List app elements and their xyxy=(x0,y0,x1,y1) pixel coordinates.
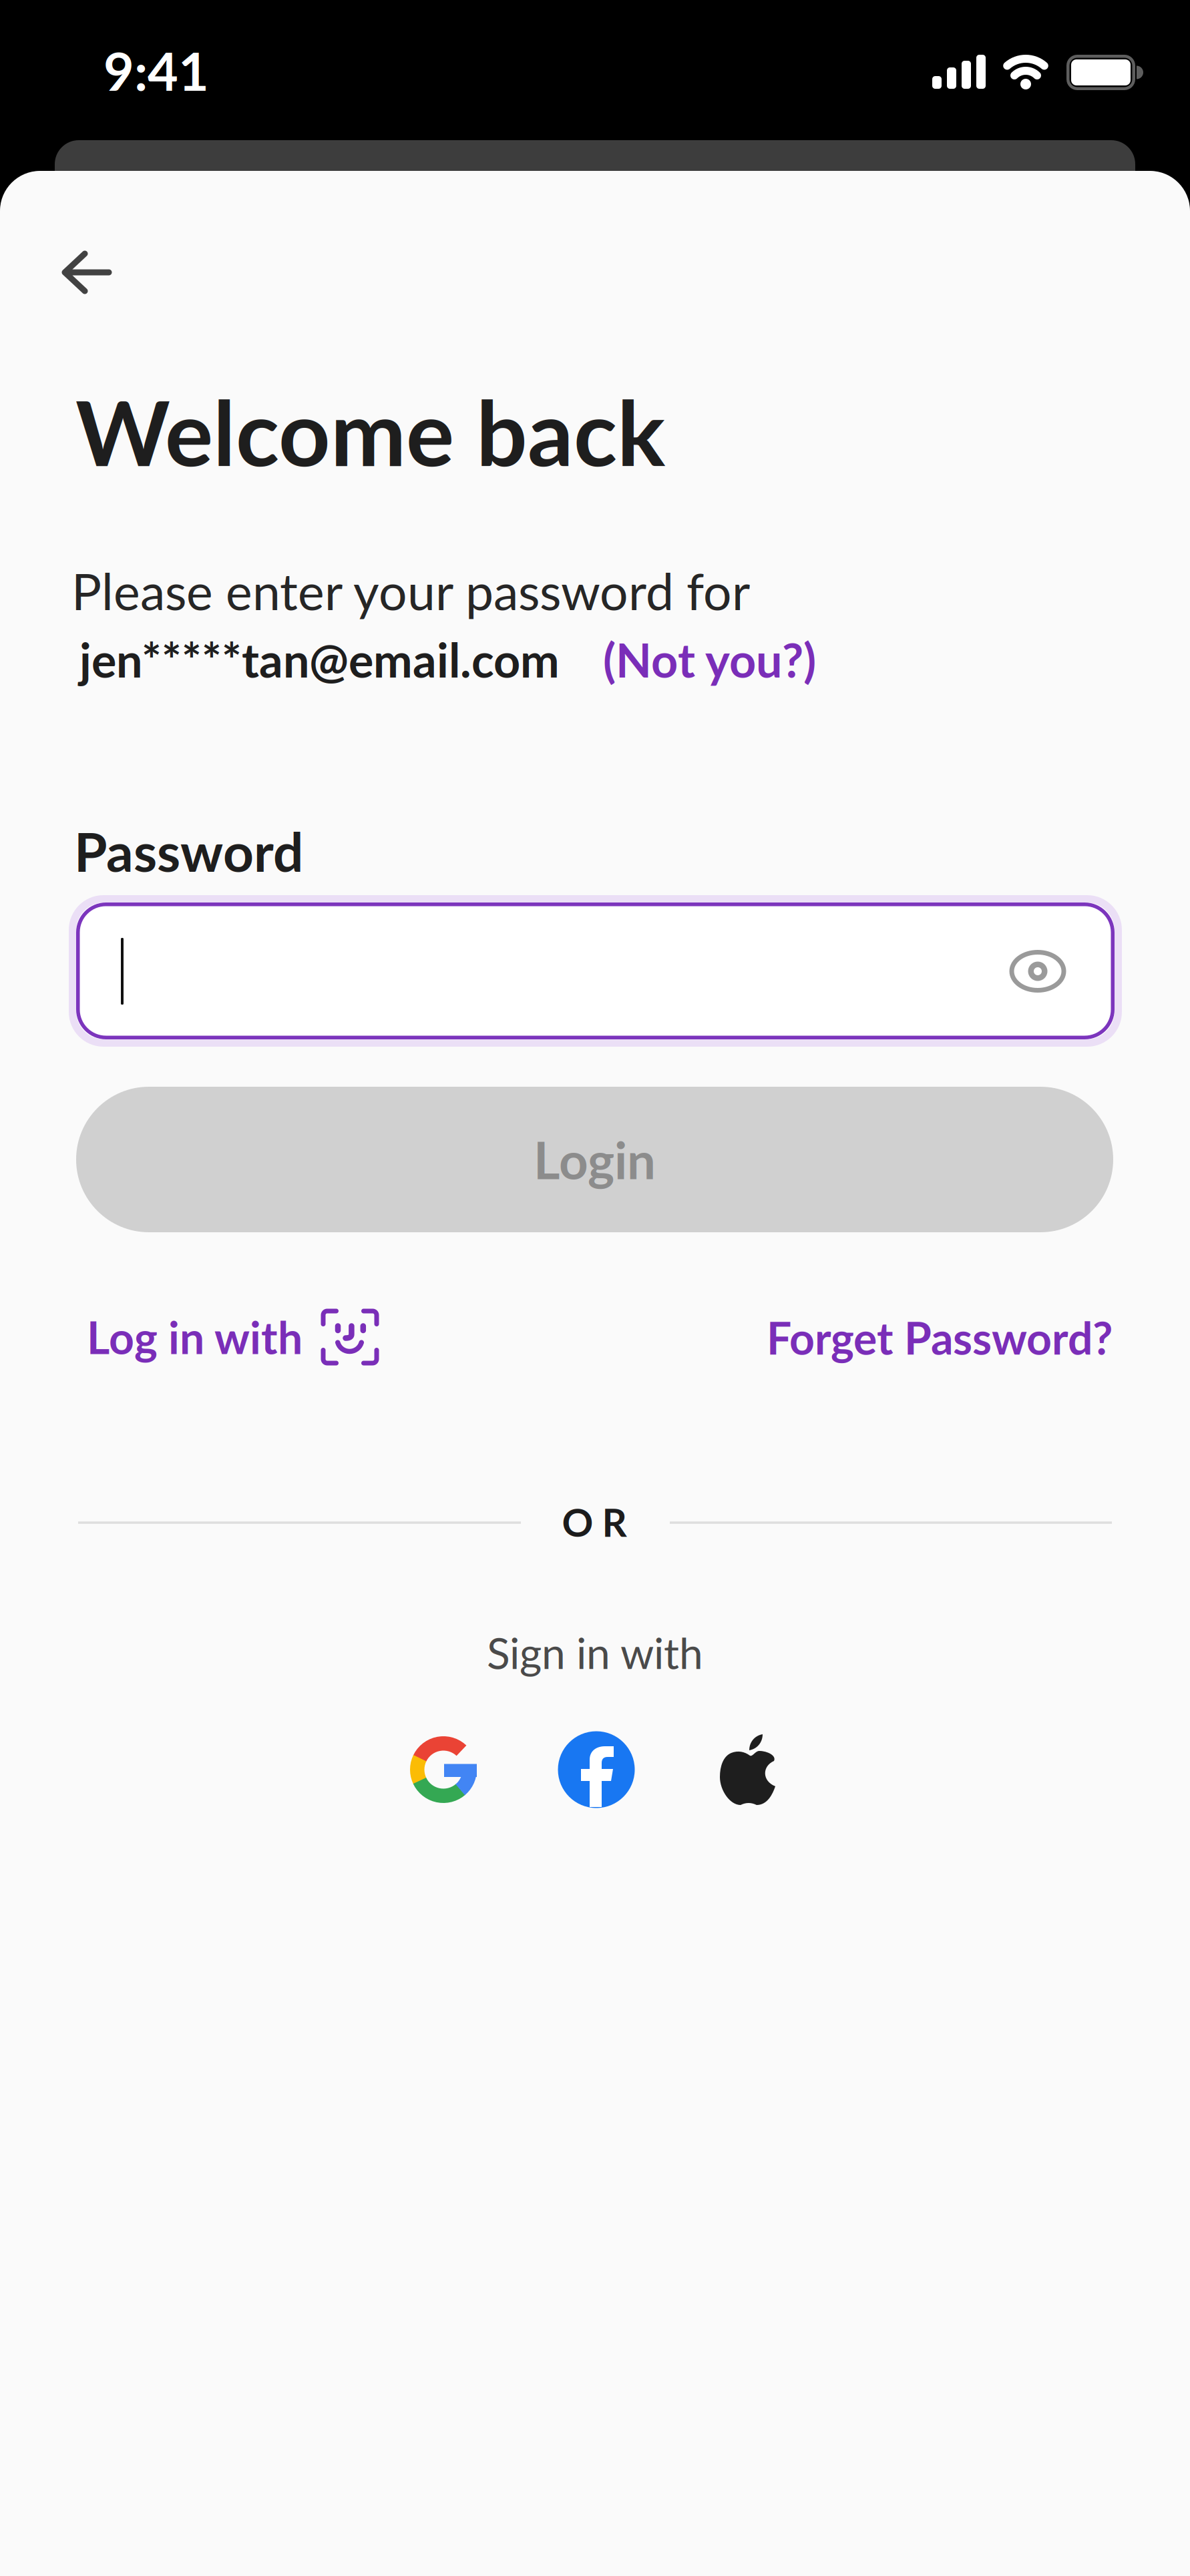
button[interactable]: Show password xyxy=(998,935,1078,1008)
button[interactable]: Log in with xyxy=(87,1307,380,1367)
staticText: (Not you?) xyxy=(603,631,816,688)
staticText: 9:41 xyxy=(104,39,209,102)
button[interactable]: Password xyxy=(69,895,1122,1047)
staticText: Login xyxy=(534,1129,656,1190)
staticText: jen*****tan@email.com xyxy=(79,631,560,688)
button[interactable]: Forget Password? xyxy=(767,1311,1113,1364)
staticText: Forget Password? xyxy=(767,1311,1113,1364)
button[interactable]: Sign in with Facebook xyxy=(556,1730,636,1810)
staticText: OR xyxy=(562,1499,627,1545)
button[interactable]: (Not you?) xyxy=(603,631,816,688)
staticText: Sign in with xyxy=(487,1627,703,1678)
staticText: Log in with xyxy=(87,1311,303,1363)
staticText: Please enter your password for xyxy=(71,561,750,621)
button[interactable]: Sign in with Apple xyxy=(712,1728,785,1814)
staticText: Welcome back xyxy=(75,377,665,485)
button[interactable]: Login xyxy=(76,1087,1113,1232)
staticText: Password xyxy=(74,819,303,883)
button[interactable]: Sign in with Google xyxy=(407,1733,480,1806)
button[interactable]: Back xyxy=(62,252,112,293)
